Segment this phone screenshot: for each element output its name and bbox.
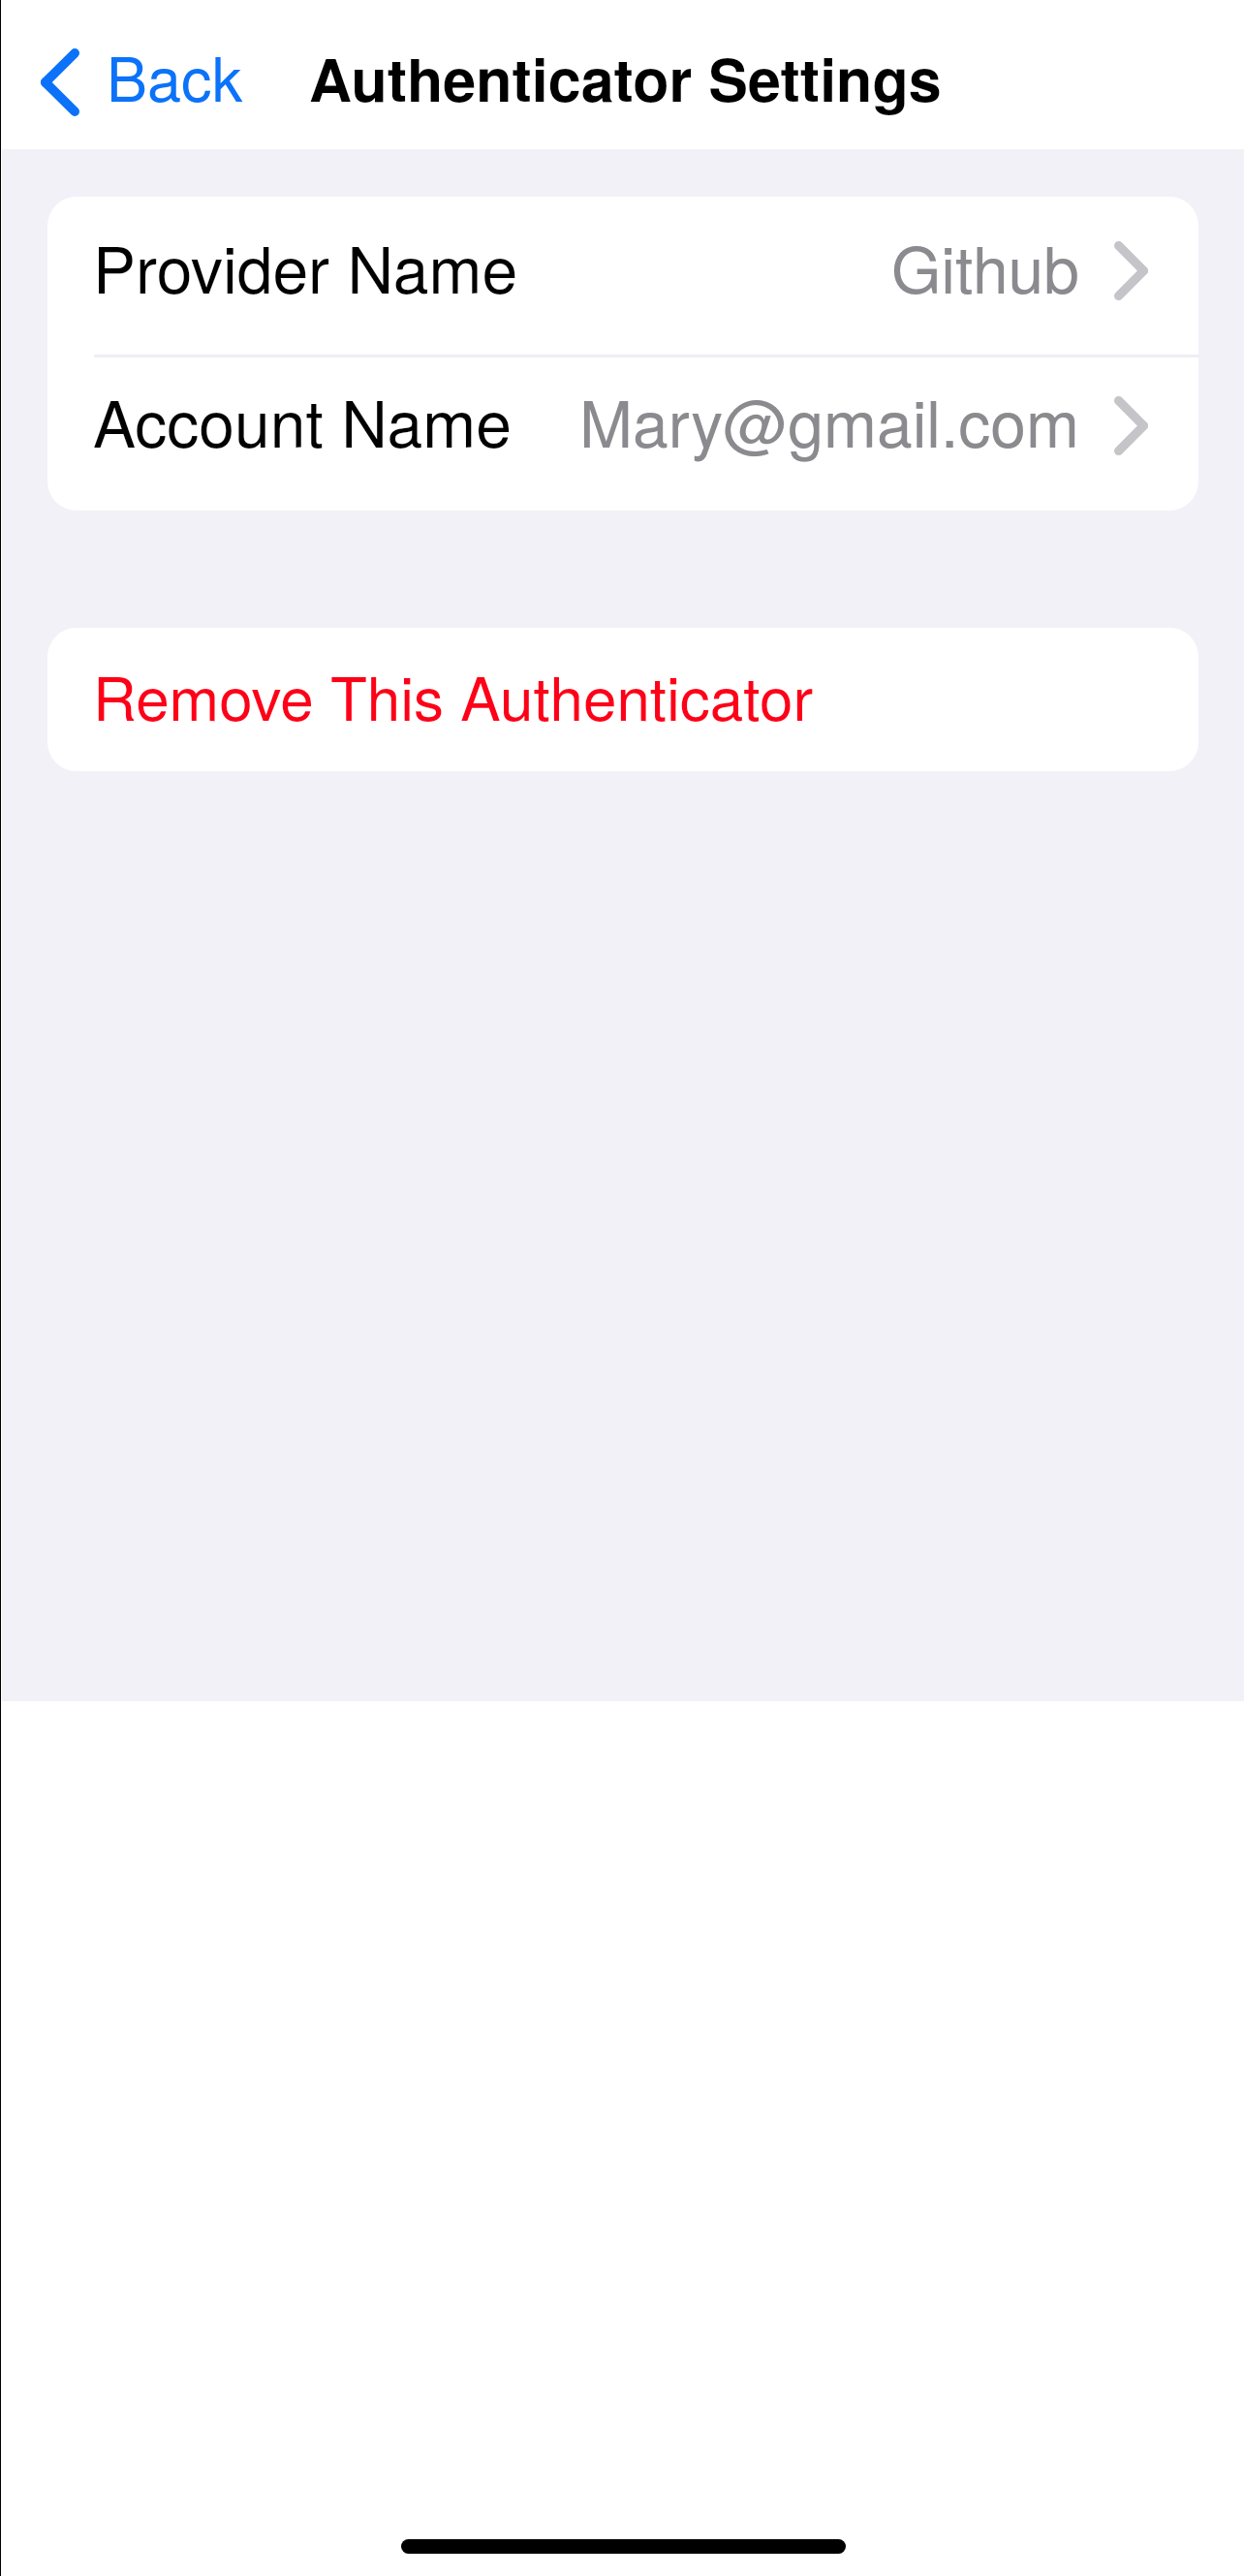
staticText: Github: [47, 220, 1079, 312]
button[interactable]: Remove This Authenticator: [47, 628, 1198, 771]
other: Back: [41, 48, 79, 116]
staticText: Mary@gmail.com: [47, 374, 1079, 466]
button[interactable]: Back: [29, 33, 252, 118]
staticText: Back: [107, 32, 243, 117]
staticText: Account Name: [93, 374, 512, 466]
button[interactable]: Account Name: [47, 357, 1198, 511]
staticText: Authenticator Settings: [309, 35, 942, 119]
staticText: Provider Name: [93, 220, 518, 312]
button[interactable]: Provider Name: [47, 197, 1198, 355]
staticText: Remove This Authenticator: [93, 652, 814, 738]
